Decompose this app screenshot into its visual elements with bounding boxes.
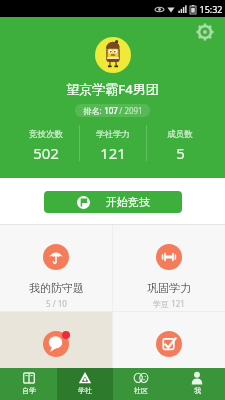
staticText: 学豆 121	[153, 298, 185, 309]
staticText: 望京学霸F4男团	[66, 80, 159, 98]
button[interactable]: 我的防守题	[0, 225, 112, 311]
button[interactable]: Settings	[196, 23, 214, 41]
staticText: 107	[103, 105, 119, 116]
button[interactable]: 我	[169, 368, 225, 400]
staticText: 开始竞技	[106, 195, 150, 209]
button[interactable]: 自学	[0, 368, 57, 400]
staticText: 巩固学力	[147, 281, 191, 295]
staticText: 成员数	[167, 129, 193, 140]
staticText: 15:32	[199, 3, 223, 15]
button[interactable]: 开始竞技	[44, 191, 182, 213]
button[interactable]: 竞技次数	[12, 125, 79, 161]
staticText: 学社	[78, 386, 92, 395]
staticText: 5	[176, 143, 185, 161]
button[interactable]: 排名:	[75, 104, 150, 117]
staticText: 排名:	[82, 105, 103, 116]
staticText: 121	[100, 143, 126, 161]
staticText: 5 / 10	[46, 298, 67, 309]
staticText: / 2091	[119, 105, 143, 116]
button[interactable]: 学社	[57, 368, 113, 400]
staticText: 自学	[22, 386, 36, 395]
staticText: 502	[33, 143, 59, 161]
button[interactable]: 成员数	[147, 125, 213, 161]
staticText: 社区	[134, 386, 148, 395]
staticText: 学社学力	[96, 129, 130, 140]
button[interactable]: 巩固学力	[113, 225, 225, 311]
button[interactable]: 学社消息	[0, 312, 112, 368]
staticText: 我的防守题	[29, 281, 84, 295]
button[interactable]: 学社学力	[80, 125, 146, 161]
staticText: 我	[194, 386, 201, 395]
button[interactable]: 社区	[113, 368, 169, 400]
staticText: 竞技次数	[29, 129, 63, 140]
button[interactable]: 每日任务	[113, 312, 225, 368]
button[interactable]: Group avatar	[95, 37, 131, 73]
